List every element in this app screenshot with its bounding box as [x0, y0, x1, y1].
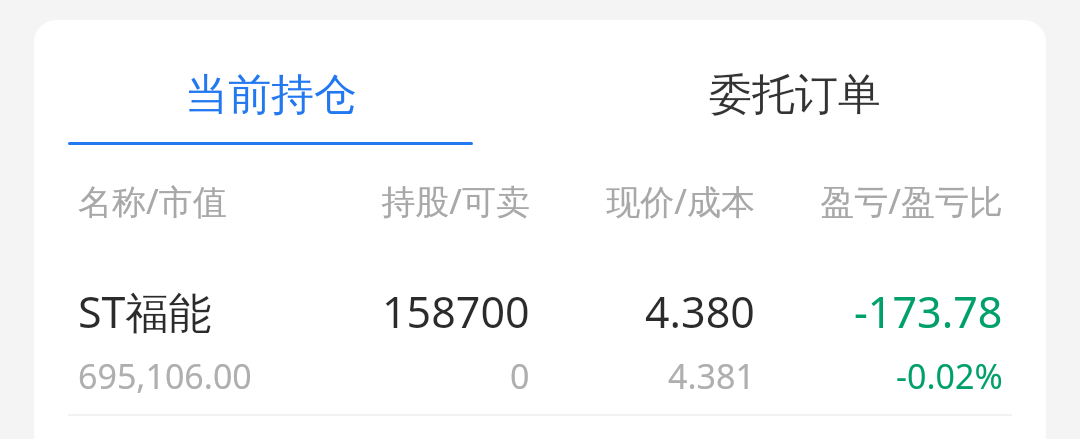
button[interactable]: 委托订单: [560, 20, 1030, 145]
staticText: 持股/可卖: [368, 178, 530, 224]
staticText: 4.381: [668, 353, 755, 399]
staticText: 委托订单: [709, 68, 881, 122]
staticText: 盈亏/盈亏比: [755, 178, 1003, 224]
staticText: ST福能: [78, 282, 212, 341]
staticText: 695,106.00: [78, 353, 252, 399]
staticText: 158700: [382, 282, 530, 341]
button[interactable]: 当前持仓: [34, 20, 506, 145]
button[interactable]: ST福能: [34, 268, 1046, 413]
staticText: -173.78: [854, 282, 1003, 341]
staticText: 名称/市值: [78, 178, 368, 224]
staticText: 现价/成本: [530, 178, 755, 224]
staticText: 4.380: [645, 282, 755, 341]
staticText: -0.02%: [896, 353, 1003, 399]
staticText: 0: [510, 353, 530, 399]
staticText: 当前持仓: [185, 68, 357, 122]
